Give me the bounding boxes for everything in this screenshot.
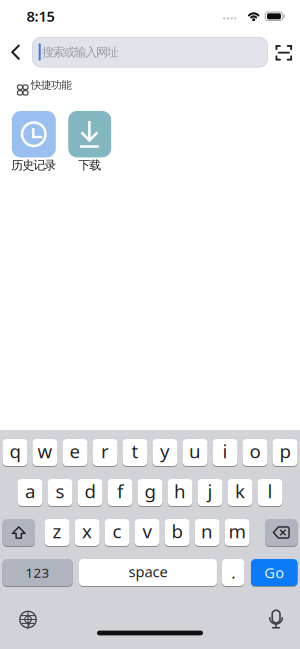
button[interactable]: 历史记录 xyxy=(12,111,56,157)
button[interactable]: w xyxy=(32,439,57,466)
button[interactable]: . xyxy=(222,559,244,586)
staticText: f xyxy=(117,479,123,503)
staticText: k xyxy=(235,479,245,503)
staticText: y xyxy=(160,439,170,463)
staticText: space xyxy=(128,562,167,581)
button[interactable]: d xyxy=(77,479,102,506)
staticText: . xyxy=(231,562,235,583)
staticText: h xyxy=(174,479,186,503)
button[interactable]: p xyxy=(272,439,297,466)
button[interactable]: y xyxy=(152,439,177,466)
button[interactable]: Go xyxy=(251,559,297,586)
button[interactable]: Delete xyxy=(265,519,297,546)
staticText: Go xyxy=(264,563,284,582)
staticText: 8:15 xyxy=(26,6,54,26)
button[interactable]: e xyxy=(62,439,87,466)
button[interactable]: b xyxy=(165,519,190,546)
button[interactable]: f xyxy=(107,479,132,506)
staticText: u xyxy=(189,439,201,463)
staticText: l xyxy=(267,479,272,503)
button[interactable]: u xyxy=(182,439,207,466)
button[interactable]: x xyxy=(75,519,100,546)
button[interactable]: Shift xyxy=(2,519,35,546)
button[interactable]: r xyxy=(92,439,117,466)
staticText: w xyxy=(37,439,52,463)
button[interactable]: space xyxy=(79,559,217,586)
button[interactable]: 搜索或输入网址 xyxy=(32,37,267,67)
button[interactable]: Dictate xyxy=(265,607,287,631)
staticText: a xyxy=(25,479,35,503)
button[interactable]: c xyxy=(105,519,130,546)
staticText: b xyxy=(172,519,183,543)
button[interactable]: i xyxy=(212,439,237,466)
staticText: 123 xyxy=(26,564,50,581)
staticText: o xyxy=(249,439,260,463)
staticText: v xyxy=(143,519,152,543)
button[interactable]: n xyxy=(195,519,220,546)
staticText: g xyxy=(144,479,155,503)
staticText: s xyxy=(55,479,64,503)
button[interactable]: g xyxy=(137,479,162,506)
button[interactable]: 下载 xyxy=(68,111,111,157)
staticText: p xyxy=(279,439,290,463)
button[interactable]: m xyxy=(225,519,250,546)
button[interactable]: j xyxy=(197,479,222,506)
staticText: q xyxy=(9,439,20,463)
button[interactable]: l xyxy=(257,479,282,506)
button[interactable]: q xyxy=(2,439,27,466)
staticText: x xyxy=(82,519,92,543)
staticText: 下载 xyxy=(78,158,101,173)
staticText: 搜索或输入网址 xyxy=(42,45,119,60)
button[interactable]: o xyxy=(242,439,267,466)
staticText: i xyxy=(222,439,227,463)
button[interactable]: h xyxy=(167,479,192,506)
button[interactable]: k xyxy=(227,479,252,506)
staticText: c xyxy=(113,519,122,543)
staticText: r xyxy=(101,439,109,463)
staticText: 快捷功能 xyxy=(31,78,72,91)
button[interactable]: v xyxy=(135,519,160,546)
staticText: t xyxy=(131,439,138,463)
button[interactable]: Next keyboard xyxy=(16,607,40,631)
button[interactable]: t xyxy=(122,439,147,466)
button[interactable]: z xyxy=(45,519,70,546)
button[interactable]: s xyxy=(47,479,72,506)
staticText: n xyxy=(201,519,213,543)
button[interactable]: Scan xyxy=(273,42,295,64)
staticText: d xyxy=(84,479,95,503)
button[interactable]: Back xyxy=(6,40,26,64)
staticText: 历史记录 xyxy=(11,158,56,173)
staticText: e xyxy=(69,439,80,463)
staticText: m xyxy=(229,519,246,543)
staticText: j xyxy=(207,479,212,503)
button[interactable]: 123 xyxy=(2,559,73,586)
button[interactable]: a xyxy=(17,479,42,506)
staticText: z xyxy=(53,519,62,543)
